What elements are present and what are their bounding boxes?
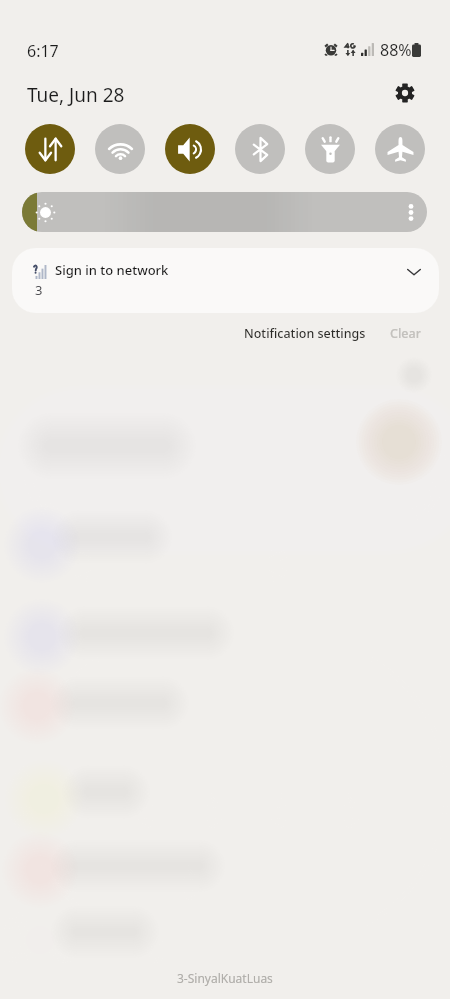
staticText: 88% — [380, 39, 412, 61]
button[interactable]: Expand notification — [397, 255, 431, 289]
staticText: 3 — [35, 281, 43, 299]
staticText: Notification settings — [244, 325, 366, 342]
button[interactable]: Mobile data — [25, 124, 75, 174]
button[interactable]: Sound — [165, 124, 215, 174]
button[interactable]: Brightness — [22, 192, 427, 232]
button[interactable]: Clear — [390, 325, 421, 342]
staticText: Clear — [390, 325, 421, 342]
button[interactable]: Airplane mode — [375, 124, 425, 174]
staticText: Tue, Jun 28 — [27, 82, 125, 108]
staticText: Sign in to network — [55, 261, 169, 279]
button[interactable]: Bluetooth — [235, 124, 285, 174]
button[interactable]: Sign in to network — [12, 248, 439, 313]
staticText: 3-SinyalKuatLuas — [177, 970, 273, 986]
button[interactable]: Flashlight — [305, 124, 355, 174]
button[interactable]: Notification settings — [244, 325, 366, 342]
button[interactable]: Settings — [387, 75, 423, 111]
button[interactable]: Wi-Fi — [95, 124, 145, 174]
staticText: 6:17 — [27, 40, 59, 62]
